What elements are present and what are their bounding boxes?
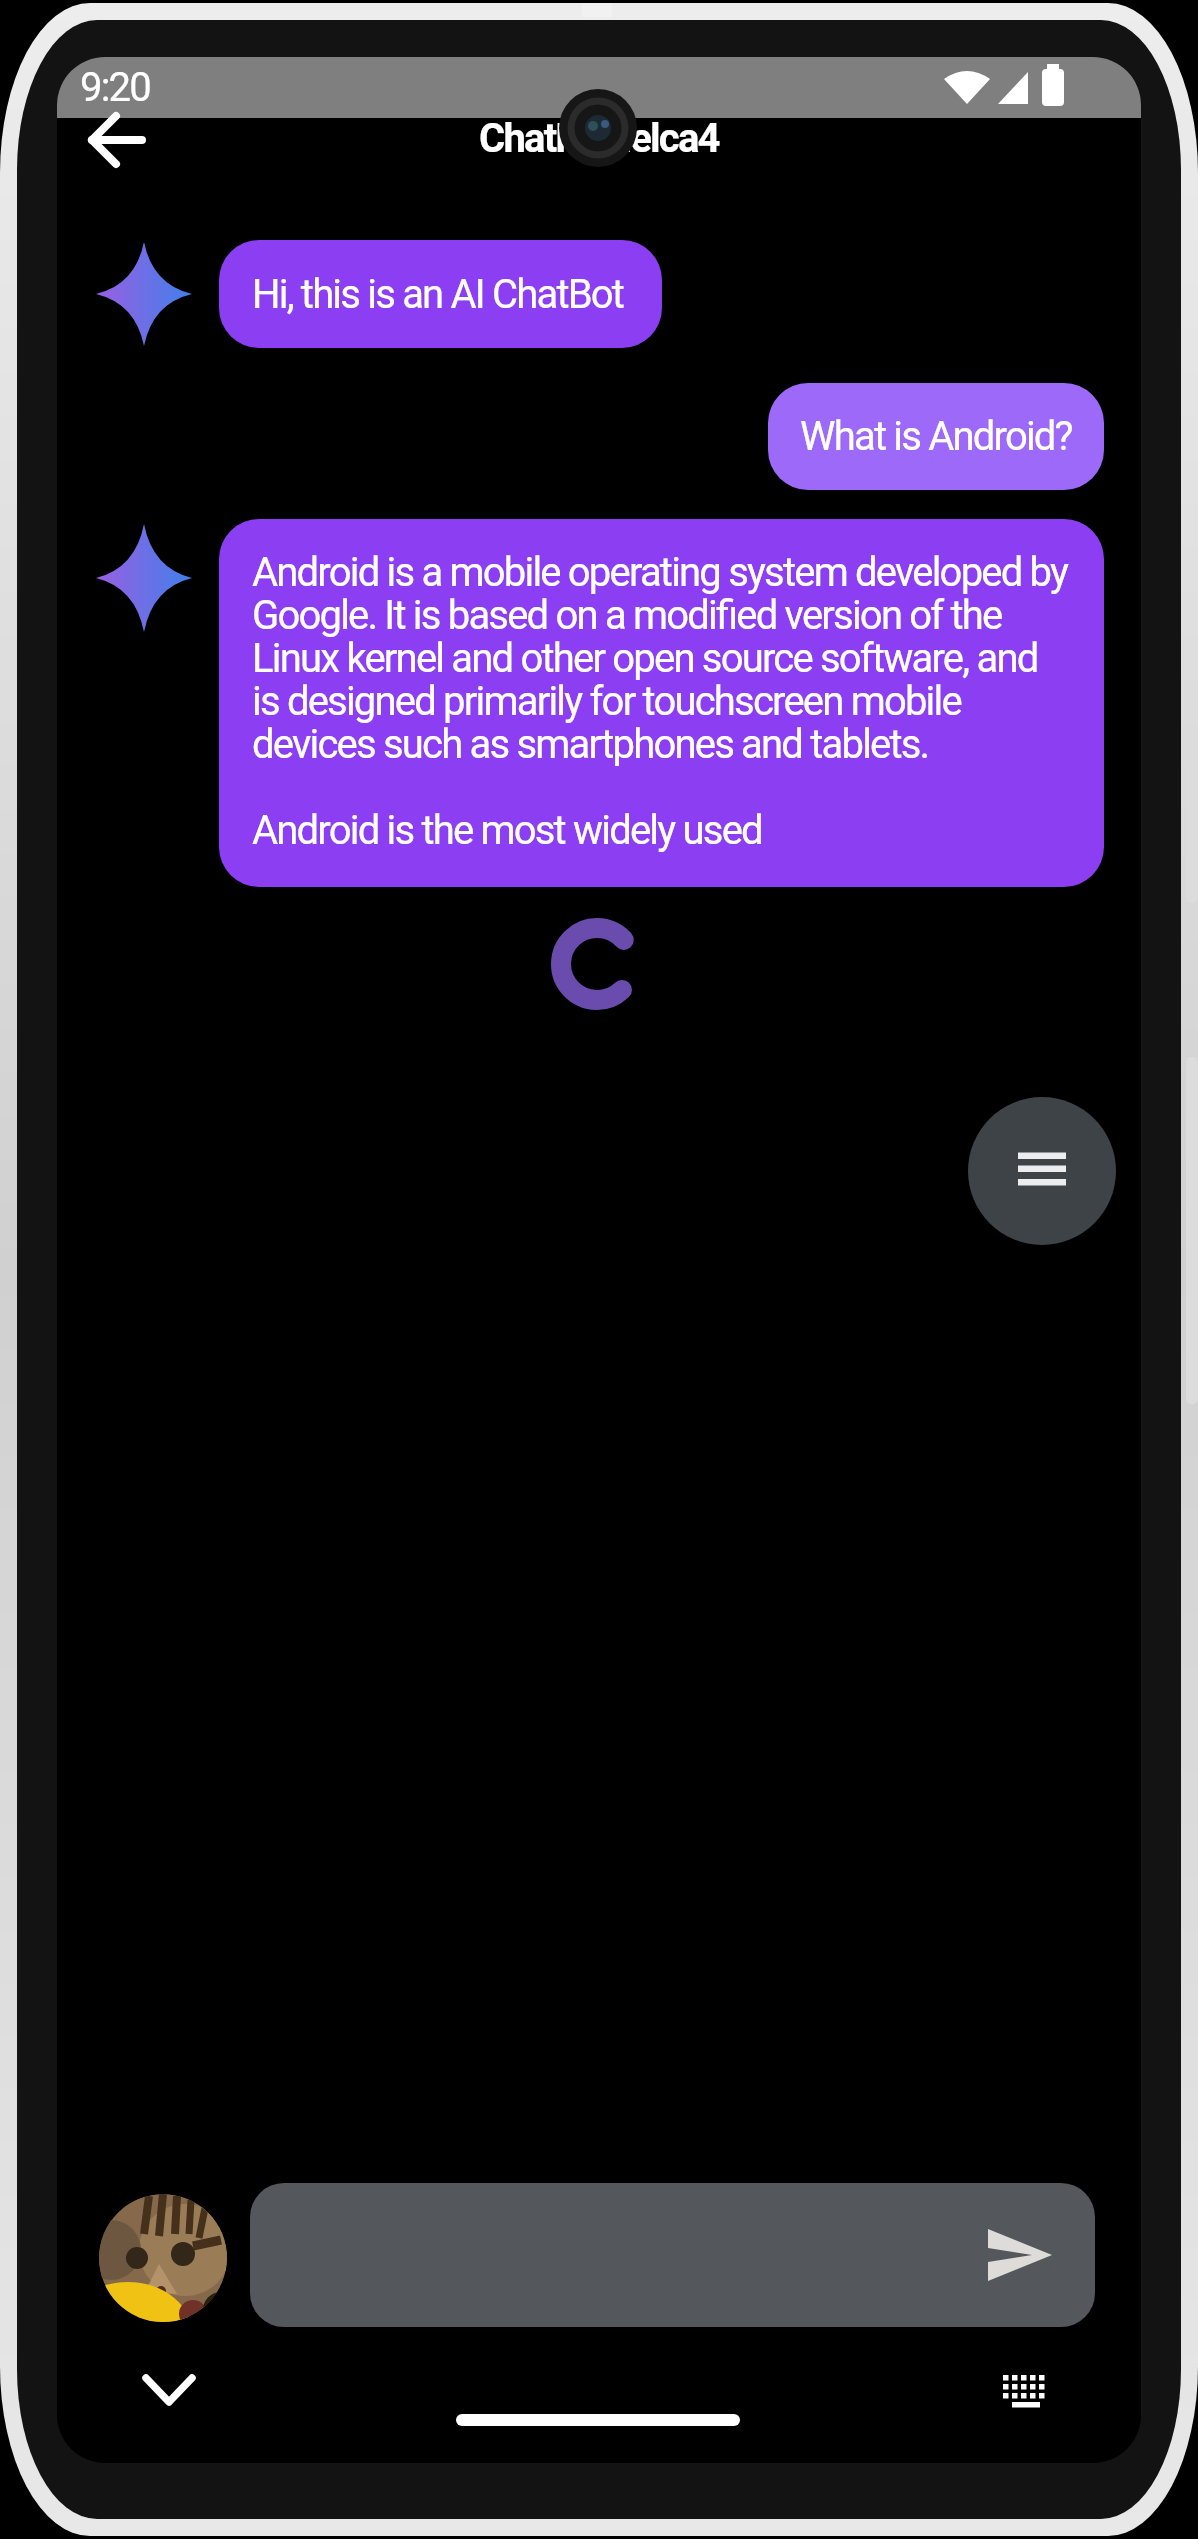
- button[interactable]: [968, 1097, 1116, 1245]
- staticText: ChatModelca4: [479, 115, 719, 162]
- button[interactable]: [993, 2362, 1057, 2422]
- button[interactable]: [72, 100, 162, 180]
- button[interactable]: [135, 2358, 203, 2424]
- staticText: 9:20: [80, 64, 150, 111]
- button[interactable]: [250, 2183, 1095, 2327]
- staticText: Android is a mobile operating system dev…: [252, 549, 1068, 854]
- staticText: What is Android?: [800, 413, 1072, 460]
- button[interactable]: [99, 2194, 227, 2322]
- staticText: Hi, this is an AI ChatBot: [252, 271, 624, 318]
- button[interactable]: [970, 2211, 1070, 2299]
